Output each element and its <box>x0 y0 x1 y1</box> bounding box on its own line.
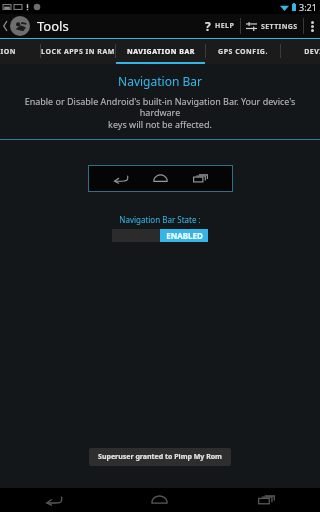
staticText: ENABLED <box>166 230 203 241</box>
button[interactable]: ATION <box>0 39 40 64</box>
staticText: Enable or Disable Android's built-in Nav… <box>6 95 314 131</box>
staticText: 3:21 <box>299 1 317 13</box>
button[interactable]: DEVICE <box>281 39 320 64</box>
staticText: GPS CONFIG. <box>218 47 268 57</box>
button[interactable]: Home <box>106 488 213 512</box>
button[interactable]: SETTINGS <box>241 21 303 32</box>
staticText: HELP <box>215 21 235 31</box>
button[interactable]: Recent apps <box>213 488 320 512</box>
button[interactable]: Back <box>0 488 106 512</box>
button[interactable]: ? <box>200 18 240 34</box>
staticText: Tools <box>37 17 69 35</box>
staticText: ATION <box>0 47 16 57</box>
button[interactable]: More options <box>304 14 320 38</box>
button[interactable]: Navigation bar preview <box>88 165 233 192</box>
staticText: NAVIGATION BAR <box>127 47 195 57</box>
button[interactable]: ENABLED <box>112 229 208 242</box>
staticText: ? <box>205 18 211 34</box>
staticText: Navigation Bar <box>0 73 320 89</box>
button[interactable]: Navigate up <box>0 14 32 38</box>
staticText: Navigation Bar State : <box>0 214 320 225</box>
staticText: SETTINGS <box>261 22 298 32</box>
staticText: DEVICE <box>304 47 320 57</box>
button[interactable]: GPS CONFIG. <box>206 39 280 64</box>
staticText: Superuser granted to Pimp My Rom <box>98 452 222 462</box>
button[interactable]: NAVIGATION BAR <box>116 39 205 64</box>
staticText: LOCK APPS IN RAM <box>41 47 115 57</box>
button[interactable]: LOCK APPS IN RAM <box>41 39 115 64</box>
